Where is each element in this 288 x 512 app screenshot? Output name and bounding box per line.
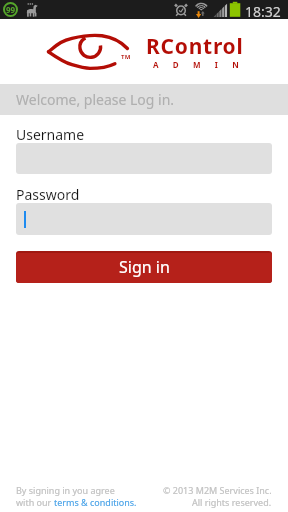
staticText: By signing in you agree — [16, 484, 115, 496]
button[interactable]: Sign in — [16, 251, 272, 283]
button[interactable]: By signing in you agree — [16, 484, 137, 508]
staticText: 18:32 — [245, 2, 281, 21]
staticText: © 2013 M2M Services Inc. — [163, 484, 272, 496]
staticText: TM — [121, 53, 131, 61]
staticText: Username — [16, 125, 85, 144]
staticText: 99 — [6, 4, 16, 15]
staticText: Sign in — [119, 256, 170, 278]
staticText: All rights reserved. — [192, 496, 272, 508]
staticText: RControl — [146, 32, 244, 61]
button[interactable] — [16, 203, 272, 235]
staticText: terms & conditions. — [54, 496, 137, 508]
staticText: with our — [16, 496, 54, 508]
staticText: Welcome, please Log in. — [16, 90, 175, 109]
staticText: A D M I N — [153, 59, 245, 70]
staticText: Password — [16, 185, 80, 204]
